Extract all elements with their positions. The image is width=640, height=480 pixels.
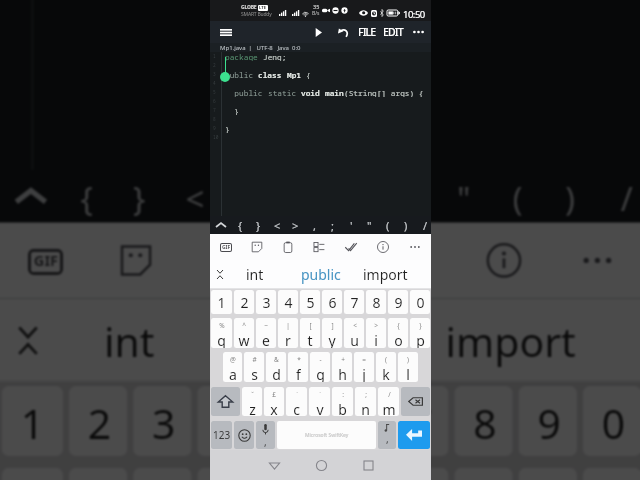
button[interactable]: / [416,216,434,234]
button[interactable]: Enter [398,421,430,449]
button[interactable]: shift [211,387,240,416]
button[interactable]: " [437,170,489,222]
button[interactable]: gif [0,222,89,298]
button[interactable]: 3 [133,386,191,456]
button[interactable]: - [310,352,330,382]
button[interactable]: 3 [256,290,276,314]
button[interactable]: 5 [262,386,320,456]
button[interactable]: 2 [69,386,127,456]
button[interactable]: ˘ [242,387,262,416]
button[interactable]: @ [223,352,242,382]
button[interactable]: Recent apps [345,450,391,480]
button[interactable]: 2 [234,290,254,314]
button[interactable]: < [268,216,286,234]
button[interactable]: > [366,318,386,348]
button[interactable]: clip [180,222,270,298]
button[interactable]: Undo [332,21,354,43]
button[interactable]: ] [326,468,384,480]
button[interactable]: Home [298,450,344,480]
button[interactable]: ˙ [309,387,330,416]
button[interactable]: { [388,318,408,348]
button[interactable]: info [457,222,551,298]
button[interactable]: < [168,170,221,222]
button[interactable]: 123 [211,421,232,449]
button[interactable]: info [367,234,399,260]
button[interactable]: Hide symbols [212,216,230,234]
button[interactable]: ' [342,216,360,234]
button[interactable]: 0 [583,386,640,456]
button[interactable]: 5 [300,290,320,314]
button[interactable]: trans [303,234,335,260]
button[interactable]: ( [376,352,396,382]
button[interactable]: } [249,216,267,234]
button[interactable]: | [278,318,298,348]
button[interactable]: { [60,170,113,222]
button[interactable]: dots [551,222,640,298]
button[interactable]: 8 [366,290,386,314]
button[interactable]: backspace [401,387,430,416]
button[interactable]: int [231,260,279,288]
button[interactable]: 4 [197,386,256,456]
button[interactable]: £ [264,387,284,416]
button[interactable]: EDIT [377,21,408,43]
button[interactable]: public [286,260,356,288]
button[interactable]: ( [379,216,397,234]
button[interactable]: * [288,352,308,382]
button[interactable]: [ [300,318,320,348]
button[interactable]: clip [272,234,303,260]
button[interactable]: % [211,318,232,348]
button[interactable]: sticker [241,234,272,260]
button[interactable]: ; [323,216,341,234]
button[interactable]: import [437,298,583,380]
button[interactable]: ^ [234,318,254,348]
button[interactable]: < [344,318,364,348]
button[interactable]: check [364,222,457,298]
button[interactable]: Expand suggestions [210,260,230,288]
button[interactable]: , [305,216,323,234]
button[interactable]: Hide symbols [5,170,57,222]
button[interactable]: period [378,421,396,449]
button[interactable]: + [332,352,352,382]
button[interactable]: check [335,234,367,260]
button[interactable]: mic [256,421,275,449]
button[interactable]: emoji [234,421,254,449]
button[interactable]: 6 [322,290,342,314]
button[interactable]: < [390,468,448,480]
button[interactable]: 1 [211,290,232,314]
button[interactable]: 8 [454,386,513,456]
button[interactable]: ( [492,170,545,222]
button[interactable]: ˙ [286,387,307,416]
button[interactable]: ] [322,318,342,348]
button[interactable]: 9 [388,290,408,314]
button[interactable]: 7 [344,290,364,314]
button[interactable]: / [600,170,640,222]
button[interactable]: ~ [256,318,276,348]
button[interactable]: 7 [390,386,448,456]
button[interactable]: 6 [326,386,384,456]
button[interactable]: FILE [352,21,382,43]
button[interactable]: Menu [214,21,238,43]
button[interactable]: Back [251,450,297,480]
button[interactable]: sticker [89,222,180,298]
button[interactable]: } [410,318,430,348]
button[interactable]: 0 [410,290,430,314]
button[interactable]: Space [277,421,376,449]
button[interactable]: 4 [278,290,298,314]
button[interactable]: } [113,170,165,222]
button[interactable]: dots [399,234,431,260]
button[interactable]: { [231,216,249,234]
button[interactable]: > [286,216,304,234]
button[interactable]: : [332,387,353,416]
button[interactable]: import [360,260,410,288]
button[interactable]: ' [384,170,437,222]
button[interactable]: More options [408,21,429,43]
button[interactable]: int [60,298,200,380]
button[interactable]: 9 [519,386,577,456]
button[interactable]: gif [210,234,241,260]
button[interactable]: Run [307,21,329,43]
button[interactable]: public [221,298,425,380]
